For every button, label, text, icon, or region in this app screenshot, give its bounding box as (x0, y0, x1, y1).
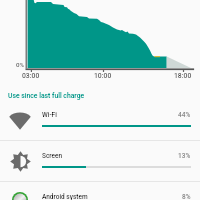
staticText: 44% (178, 111, 191, 119)
staticText: 8% (182, 193, 191, 200)
button[interactable]: Screen (0, 140, 200, 181)
staticText: Wi-Fi (42, 111, 57, 119)
other: Screen (10, 151, 31, 172)
staticText: 10:00 (94, 72, 112, 80)
other: Wi-Fi (9, 111, 31, 130)
staticText: Use since last full charge (8, 92, 85, 100)
button[interactable]: Wi-Fi (0, 99, 200, 140)
other: Android system (12, 192, 28, 200)
staticText: Screen (42, 152, 63, 160)
staticText: 03:00 (22, 72, 40, 80)
staticText: 0% (16, 61, 25, 68)
button[interactable]: Android system (0, 181, 200, 200)
staticText: 18:00 (174, 72, 192, 80)
staticText: Android system (42, 193, 88, 200)
staticText: 13% (178, 152, 191, 160)
